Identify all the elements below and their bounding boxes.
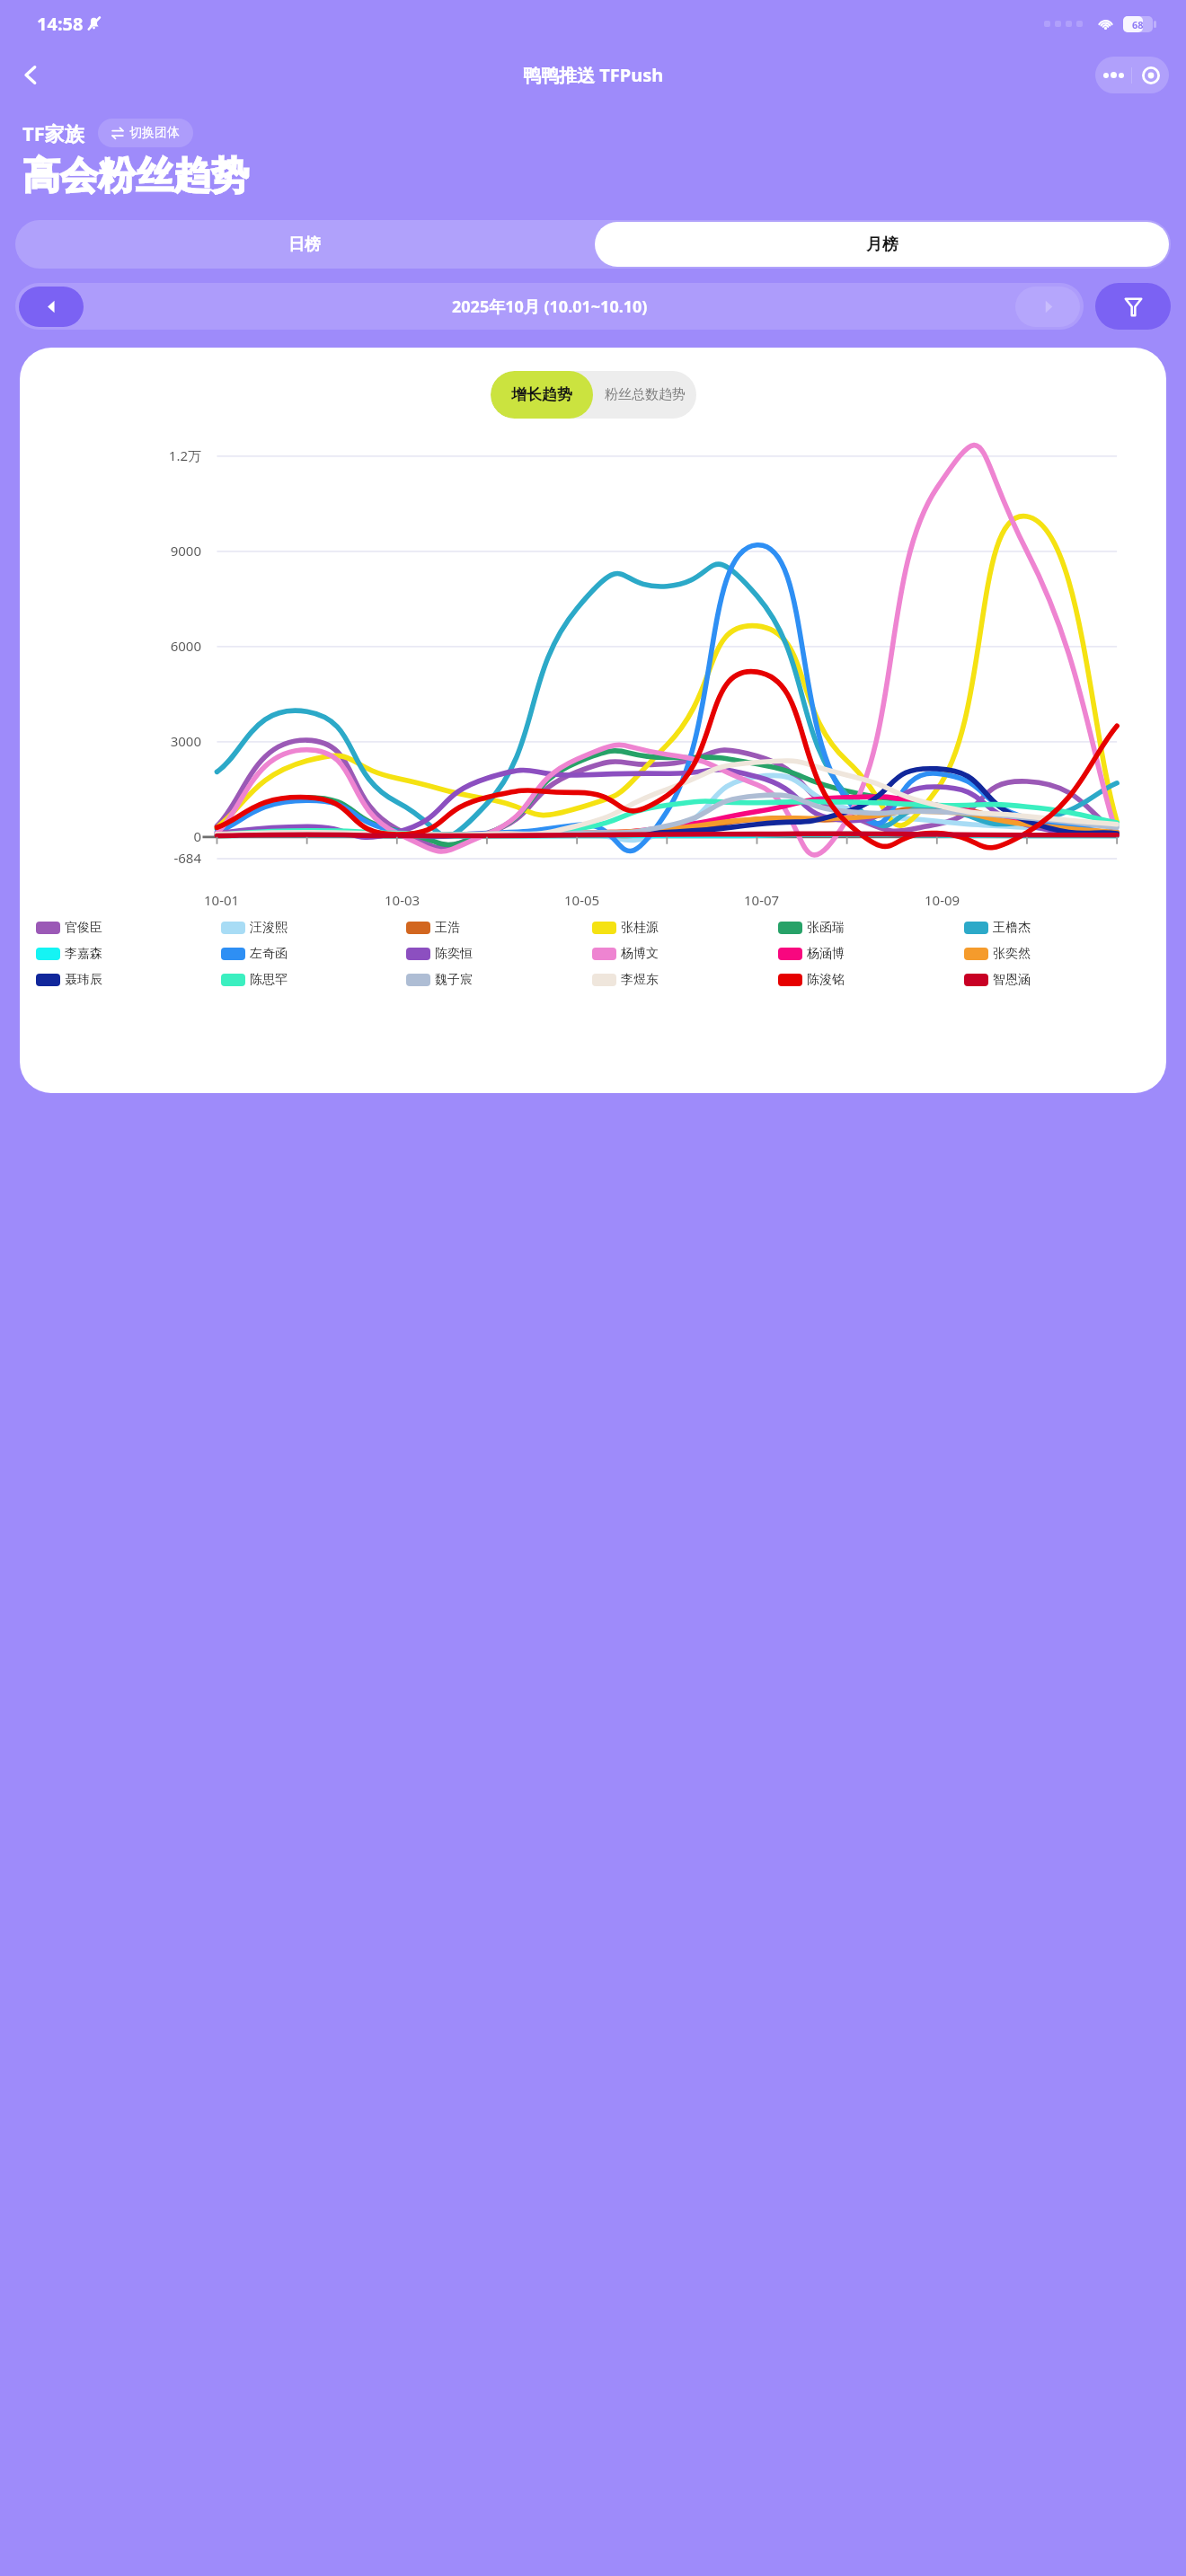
staticText: 10-03 — [385, 891, 420, 909]
staticText: 2025年10月 (10.01~10.10) — [452, 296, 648, 318]
button[interactable]: 李煜东 — [592, 972, 778, 988]
button[interactable]: 日榜 — [15, 220, 593, 269]
button[interactable]: 陈奕恒 — [406, 946, 592, 962]
staticText: 聂玮辰 — [65, 972, 102, 988]
staticText: 智恩涵 — [993, 972, 1031, 988]
staticText: TF家族 — [22, 119, 84, 146]
staticText: 官俊臣 — [65, 920, 102, 936]
staticText: 10-07 — [744, 891, 780, 909]
staticText: 切换团体 — [129, 125, 180, 141]
staticText: 1.2万 — [168, 446, 201, 464]
button[interactable]: 月榜 — [595, 222, 1169, 267]
staticText: 月榜 — [866, 234, 898, 255]
staticText: 3000 — [170, 732, 201, 750]
staticText: 李煜东 — [621, 972, 659, 988]
button[interactable]: Previous period — [19, 287, 84, 327]
button[interactable]: Filter — [1095, 283, 1171, 330]
staticText: 杨涵博 — [807, 946, 845, 962]
button[interactable]: 陈思罕 — [221, 972, 406, 988]
button[interactable]: 张桂源 — [592, 920, 778, 936]
staticText: 张函瑞 — [807, 920, 845, 936]
staticText: 杨博文 — [621, 946, 659, 962]
button[interactable]: 粉丝总数趋势 — [593, 371, 696, 419]
button[interactable]: 左奇函 — [221, 946, 406, 962]
button[interactable]: 切换团体 — [98, 119, 193, 147]
button[interactable]: 杨博文 — [592, 946, 778, 962]
staticText: 左奇函 — [250, 946, 288, 962]
staticText: 王浩 — [435, 920, 460, 936]
button[interactable]: 王浩 — [406, 920, 592, 936]
staticText: 鸭鸭推送 TFPush — [523, 63, 664, 87]
staticText: 魏子宸 — [435, 972, 473, 988]
staticText: 9000 — [170, 542, 201, 560]
button[interactable]: 陈浚铭 — [778, 972, 964, 988]
button[interactable]: 张函瑞 — [778, 920, 964, 936]
staticText: 张桂源 — [621, 920, 659, 936]
staticText: 陈奕恒 — [435, 946, 473, 962]
button[interactable]: Next period — [1015, 287, 1080, 327]
staticText: 张奕然 — [993, 946, 1031, 962]
button[interactable]: 王橹杰 — [964, 920, 1150, 936]
button[interactable]: 魏子宸 — [406, 972, 592, 988]
button[interactable]: 汪浚熙 — [221, 920, 406, 936]
button[interactable]: 李嘉森 — [36, 946, 221, 962]
button[interactable]: Back — [9, 53, 52, 96]
staticText: 68 — [1132, 18, 1144, 31]
staticText: 10-05 — [564, 891, 600, 909]
staticText: 陈思罕 — [250, 972, 288, 988]
staticText: 日榜 — [288, 234, 321, 255]
staticText: 10-01 — [204, 891, 240, 909]
button[interactable]: 张奕然 — [964, 946, 1150, 962]
staticText: 粉丝总数趋势 — [605, 386, 686, 403]
staticText: 李嘉森 — [65, 946, 102, 962]
button[interactable]: Close — [1132, 57, 1169, 93]
button[interactable]: 增长趋势 — [491, 371, 593, 419]
staticText: 王橹杰 — [993, 920, 1031, 936]
button[interactable]: 官俊臣 — [36, 920, 221, 936]
staticText: 陈浚铭 — [807, 972, 845, 988]
staticText: 10-09 — [925, 891, 960, 909]
staticText: 汪浚熙 — [250, 920, 288, 936]
staticText: 高会粉丝趋势 — [22, 153, 249, 200]
button[interactable]: More options — [1095, 57, 1131, 93]
staticText: 14:58 — [37, 12, 84, 36]
staticText: -684 — [173, 849, 201, 867]
button[interactable]: 聂玮辰 — [36, 972, 221, 988]
button[interactable]: 智恩涵 — [964, 972, 1150, 988]
staticText: 6000 — [170, 637, 201, 655]
button[interactable]: 杨涵博 — [778, 946, 964, 962]
staticText: 增长趋势 — [511, 385, 572, 404]
staticText: 0 — [193, 827, 201, 845]
